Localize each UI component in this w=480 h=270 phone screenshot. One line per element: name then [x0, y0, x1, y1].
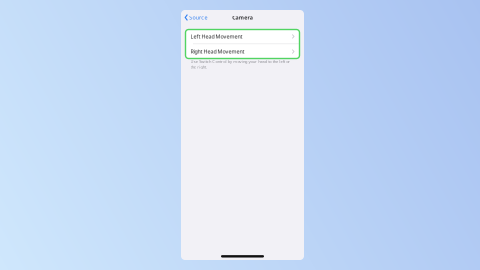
- button[interactable]: Right Head Movement: [185, 44, 299, 59]
- button[interactable]: Left Head Movement: [185, 29, 299, 44]
- staticText: Left Head Movement: [190, 33, 242, 40]
- staticText: Camera: [232, 14, 253, 21]
- staticText: Source: [189, 14, 207, 21]
- staticText: Use Switch Control by moving your head t…: [190, 59, 290, 69]
- button[interactable]: Source: [181, 10, 211, 25]
- staticText: Right Head Movement: [190, 48, 244, 55]
